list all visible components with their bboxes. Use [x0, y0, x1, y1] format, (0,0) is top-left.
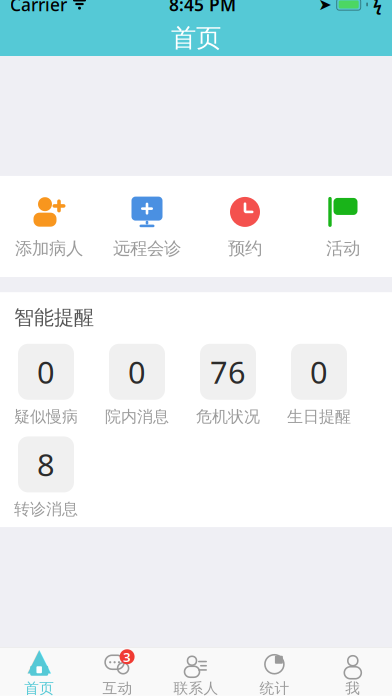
button[interactable]: 统计: [235, 646, 314, 696]
staticText: 活动: [326, 238, 360, 259]
staticText: 0: [128, 351, 146, 392]
staticText: 联系人: [173, 679, 218, 696]
button[interactable]: 我: [314, 646, 392, 696]
button[interactable]: 0: [5, 344, 87, 426]
button[interactable]: 8: [5, 436, 87, 519]
staticText: 8:45 PM: [169, 0, 236, 16]
button[interactable]: 0: [278, 344, 360, 426]
staticText: 远程会诊: [113, 238, 181, 259]
staticText: Carrier: [10, 0, 67, 16]
button[interactable]: ▲: [0, 646, 78, 696]
staticText: 添加病人: [15, 238, 83, 259]
staticText: 疑似慢病: [14, 407, 78, 426]
staticText: 危机状况: [196, 407, 260, 426]
staticText: 3: [123, 648, 131, 666]
staticText: 首页: [171, 22, 221, 53]
button[interactable]: 活动: [294, 190, 392, 263]
staticText: 互动: [103, 679, 133, 696]
button[interactable]: 添加病人: [0, 190, 98, 263]
button[interactable]: 3: [78, 646, 157, 696]
staticText: 智能提醒: [14, 305, 94, 330]
staticText: 首页: [24, 679, 54, 696]
staticText: 8: [37, 444, 55, 485]
staticText: ▲: [27, 642, 51, 677]
staticText: 转诊消息: [14, 499, 78, 519]
staticText: 生日提醒: [287, 407, 351, 426]
staticText: 预约: [228, 238, 262, 259]
staticText: ➤: [318, 0, 331, 14]
button[interactable]: 联系人: [157, 646, 235, 696]
staticText: 0: [310, 351, 328, 392]
button[interactable]: 远程会诊: [98, 190, 196, 263]
staticText: ϟ: [373, 0, 382, 15]
button[interactable]: 76: [187, 344, 269, 426]
staticText: 76: [210, 351, 246, 392]
button[interactable]: 预约: [196, 190, 294, 263]
staticText: 院内消息: [105, 407, 169, 426]
staticText: 0: [37, 351, 55, 392]
staticText: 我: [345, 679, 360, 696]
staticText: 统计: [259, 679, 289, 696]
button[interactable]: 0: [96, 344, 178, 426]
